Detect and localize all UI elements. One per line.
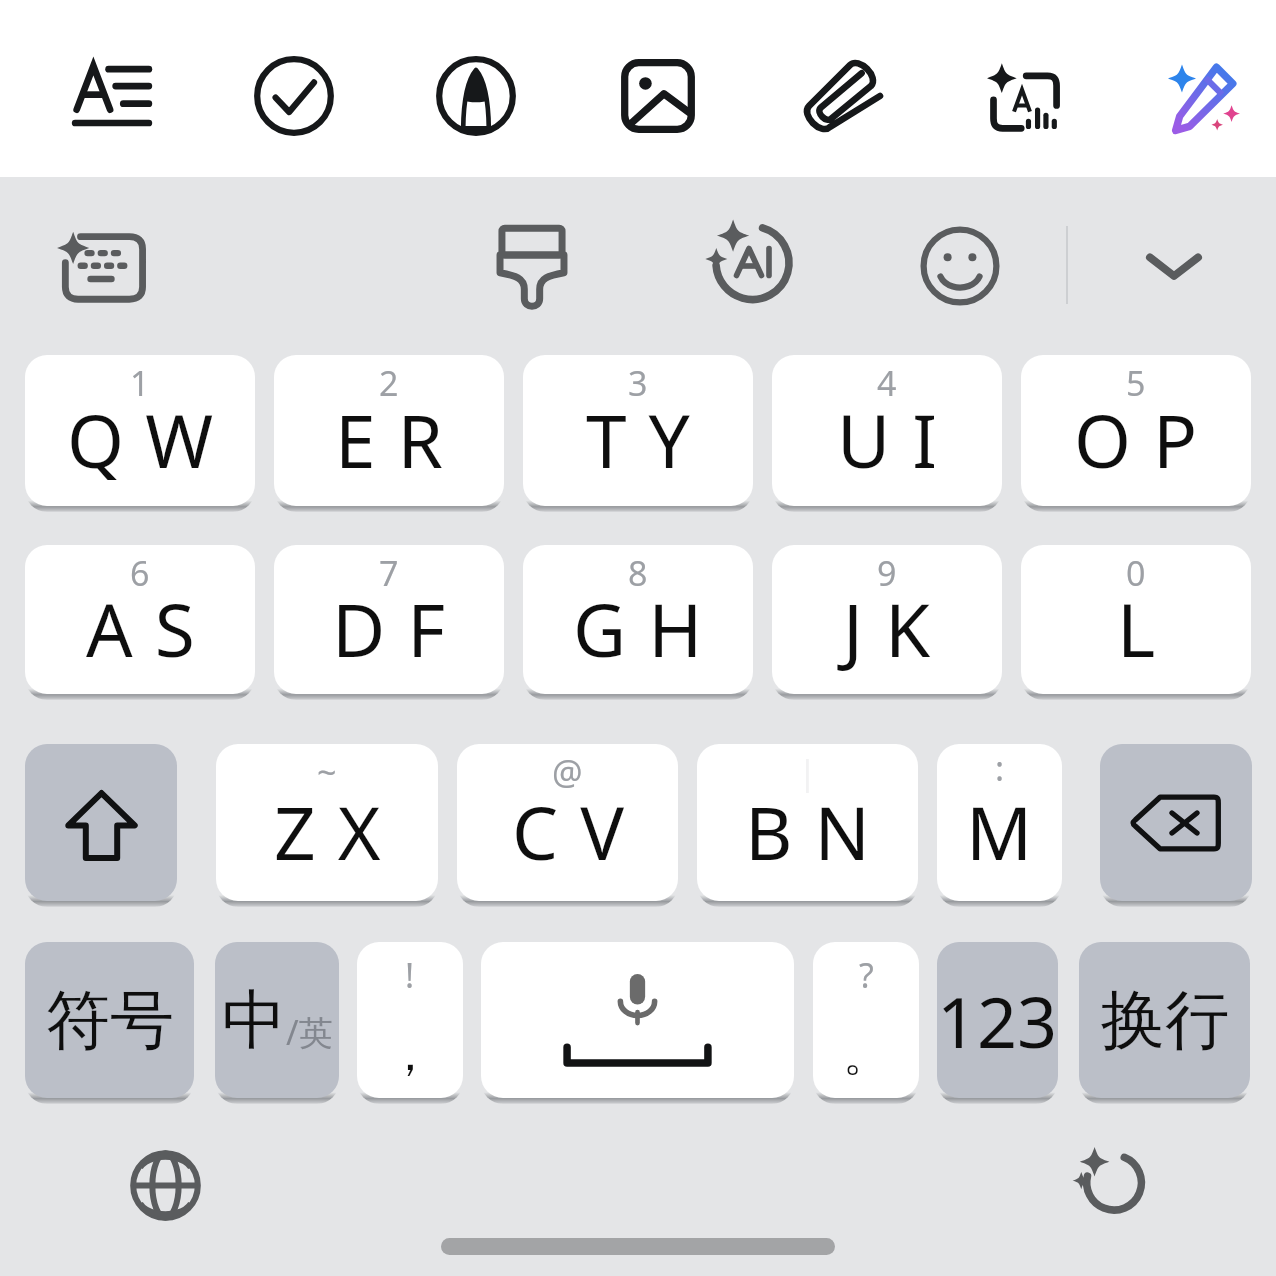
staticText: TY [586, 390, 712, 489]
button[interactable]: AI keyboard [37, 201, 167, 331]
button[interactable] [481, 942, 794, 1098]
staticText: QW [67, 390, 236, 489]
staticText: 6 [130, 550, 150, 596]
staticText: 7 [379, 550, 399, 596]
staticText: 2 [379, 360, 399, 406]
button[interactable]: 2 [274, 355, 504, 506]
staticText: L [1117, 579, 1178, 678]
button[interactable]: 换行 [1079, 942, 1250, 1098]
staticText: ER [335, 390, 465, 489]
button[interactable]: Insert image [588, 26, 728, 166]
button[interactable]: Draw [406, 26, 546, 166]
staticText: 换行 [1101, 980, 1229, 1061]
button[interactable]: AI writing [686, 203, 806, 323]
staticText: GH [573, 579, 725, 678]
staticText: /英 [286, 1009, 333, 1055]
staticText: 123 [937, 973, 1058, 1068]
button[interactable]: 6 [25, 545, 255, 694]
staticText: @ [552, 749, 583, 795]
staticText: ， [387, 1026, 433, 1084]
button[interactable]: ~ [216, 744, 438, 901]
staticText: ZX [274, 782, 403, 881]
staticText: : [995, 745, 1005, 791]
staticText: M [966, 782, 1055, 881]
staticText: ! [405, 952, 415, 998]
staticText: 中 [222, 980, 286, 1061]
staticText: BN [745, 782, 892, 881]
button[interactable]: Theme [472, 207, 592, 327]
button[interactable]: Change language [105, 1125, 225, 1245]
staticText: DF [332, 579, 468, 678]
staticText: 9 [877, 550, 897, 596]
button[interactable]: Undo [1049, 1122, 1169, 1242]
button[interactable]: 8 [523, 545, 753, 694]
button[interactable]: 3 [523, 355, 753, 506]
staticText: OP [1074, 390, 1220, 489]
staticText: 。 [843, 1026, 889, 1084]
staticText: CV [512, 782, 646, 881]
button[interactable]: 7 [274, 545, 504, 694]
staticText: 0 [1126, 550, 1146, 596]
staticText: ~ [317, 749, 337, 795]
button[interactable]: Tasks [224, 26, 364, 166]
staticText: 8 [628, 550, 648, 596]
staticText: 符号 [46, 980, 174, 1061]
button[interactable]: 123 [937, 942, 1058, 1098]
button[interactable]: ? [813, 942, 919, 1098]
staticText: ? [859, 952, 874, 998]
button[interactable] [25, 744, 177, 901]
button[interactable]: Text formatting [42, 26, 182, 166]
button[interactable]: | [697, 744, 918, 901]
staticText: UI [837, 390, 960, 489]
button[interactable]: Scan text [952, 26, 1092, 166]
button[interactable]: Hide keyboard [1114, 207, 1234, 327]
button[interactable]: 9 [772, 545, 1002, 694]
button[interactable]: 4 [772, 355, 1002, 506]
button[interactable]: : [937, 744, 1062, 901]
button[interactable]: ! [357, 942, 463, 1098]
staticText: | [798, 749, 817, 795]
staticText: AS [86, 579, 217, 678]
button[interactable]: 符号 [25, 942, 194, 1098]
staticText: JK [843, 579, 953, 678]
button[interactable]: AI assist [1134, 26, 1274, 166]
staticText: 1 [130, 360, 150, 406]
button[interactable]: Emoji [900, 206, 1020, 326]
button[interactable]: Attach file [770, 26, 910, 166]
staticText: 3 [628, 360, 648, 406]
button[interactable]: 0 [1021, 545, 1251, 694]
button[interactable]: 1 [25, 355, 255, 506]
button[interactable]: 中 [215, 942, 339, 1098]
button[interactable]: @ [457, 744, 678, 901]
staticText: 5 [1126, 360, 1146, 406]
button[interactable]: 5 [1021, 355, 1251, 506]
button[interactable] [1100, 744, 1252, 901]
staticText: 4 [877, 360, 897, 406]
